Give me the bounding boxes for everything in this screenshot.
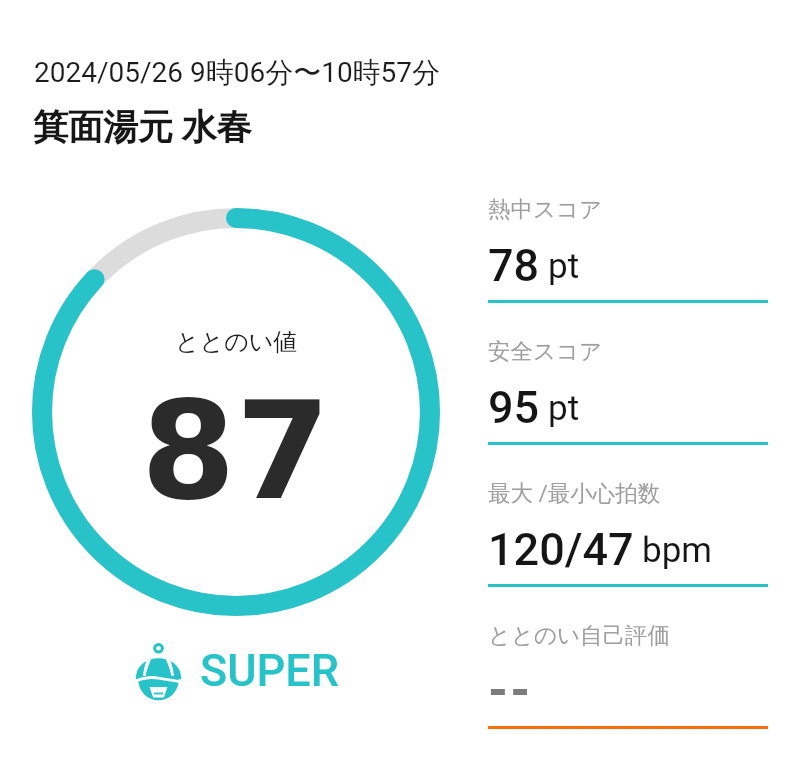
staticText: 最大 /最小心拍数 <box>488 479 661 507</box>
button[interactable]: Sauna rank icon <box>133 641 339 699</box>
staticText: pt <box>548 246 580 287</box>
staticText: 78 <box>488 239 540 292</box>
button[interactable]: 最大 /最小心拍数 <box>488 479 768 589</box>
other: Sauna rank icon <box>133 641 184 699</box>
staticText: 2024/05/26 9時06分〜10時57分 <box>34 55 441 90</box>
staticText: 87 <box>141 372 331 530</box>
staticText: 120/47 <box>488 523 634 576</box>
button[interactable]: ととのい自己評価 <box>488 621 768 731</box>
staticText: bpm <box>642 530 712 571</box>
staticText: 熱中スコア <box>488 195 603 223</box>
staticText: ととのい自己評価 <box>488 621 671 649</box>
staticText: SUPER <box>200 644 339 697</box>
staticText: 箕面湯元 水春 <box>33 105 252 149</box>
button[interactable]: 安全スコア <box>488 337 768 447</box>
staticText: ととのい値 <box>175 327 298 357</box>
button[interactable]: 熱中スコア <box>488 195 768 305</box>
staticText: 95 <box>488 381 540 434</box>
staticText: pt <box>548 388 580 429</box>
staticText: 安全スコア <box>488 337 603 365</box>
